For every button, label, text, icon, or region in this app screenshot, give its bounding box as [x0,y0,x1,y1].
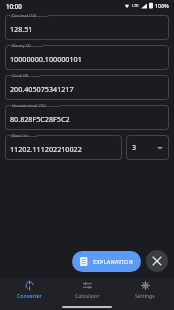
staticText: 11202.111202210022 [10,144,82,154]
staticText: Decimal (10) [12,13,37,19]
staticText: 80.828F5C28F5C2 [10,114,70,124]
button[interactable]: Octal (8) [5,75,169,100]
staticText: 100% [155,2,169,9]
button[interactable]: Decimal (10) [5,15,169,40]
button[interactable]: Hexadecimal (16) [5,105,169,130]
button[interactable]: Calculator [58,278,116,304]
staticText: 128.51 [10,24,33,34]
staticText: Hexadecimal (16) [12,103,46,109]
button[interactable]: EXPLANATION [72,251,141,272]
staticText: 200.405075341217 [10,84,74,94]
staticText: Octal (8) [12,73,29,79]
staticText: Binary (2) [12,43,31,49]
button[interactable]: Close [146,250,168,272]
staticText: Base (n) [12,133,28,139]
button[interactable]: Converter [0,278,58,304]
staticText: Calculator [75,292,100,299]
button[interactable]: Binary (2) [5,45,169,70]
staticText: 10:00 [6,2,22,10]
button[interactable]: 3 [126,135,169,160]
button[interactable]: Settings [116,278,174,304]
staticText: 10000000.100000101 [10,54,82,64]
staticText: LTE [132,3,139,8]
staticText: Converter [17,292,42,299]
staticText: Settings [135,292,155,299]
button[interactable]: Base (n) [5,135,122,160]
staticText: 3 [132,143,137,153]
staticText: EXPLANATION [93,258,133,265]
